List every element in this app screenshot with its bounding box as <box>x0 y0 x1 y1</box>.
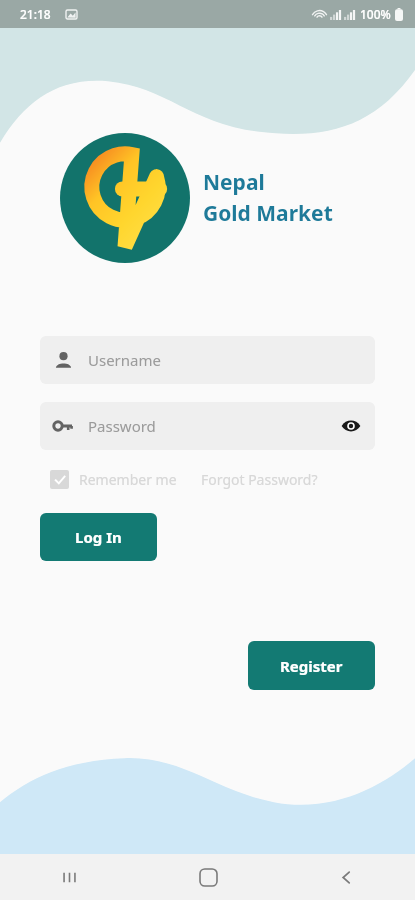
staticText: Password <box>88 416 339 436</box>
button[interactable]: Remember me <box>50 470 177 489</box>
button[interactable]: Recent apps <box>0 854 139 900</box>
button[interactable]: Username <box>40 336 375 384</box>
staticText: Nepal <box>203 168 265 197</box>
staticText: 21:18 <box>20 6 51 22</box>
button[interactable]: Back <box>277 854 415 900</box>
button[interactable]: Log In <box>40 513 157 561</box>
staticText: Forgot Password? <box>201 470 318 489</box>
staticText: Username <box>88 350 363 370</box>
button[interactable]: Toggle password visibility <box>339 414 363 438</box>
staticText: Log In <box>75 527 122 547</box>
staticText: Register <box>280 656 343 676</box>
button[interactable]: Home <box>139 854 277 900</box>
button[interactable]: Register <box>248 641 375 690</box>
staticText: 100% <box>360 6 391 22</box>
button[interactable]: Forgot Password? <box>201 470 318 489</box>
staticText: Remember me <box>79 470 177 489</box>
staticText: Gold Market <box>203 199 333 228</box>
button[interactable]: Password <box>40 402 375 450</box>
